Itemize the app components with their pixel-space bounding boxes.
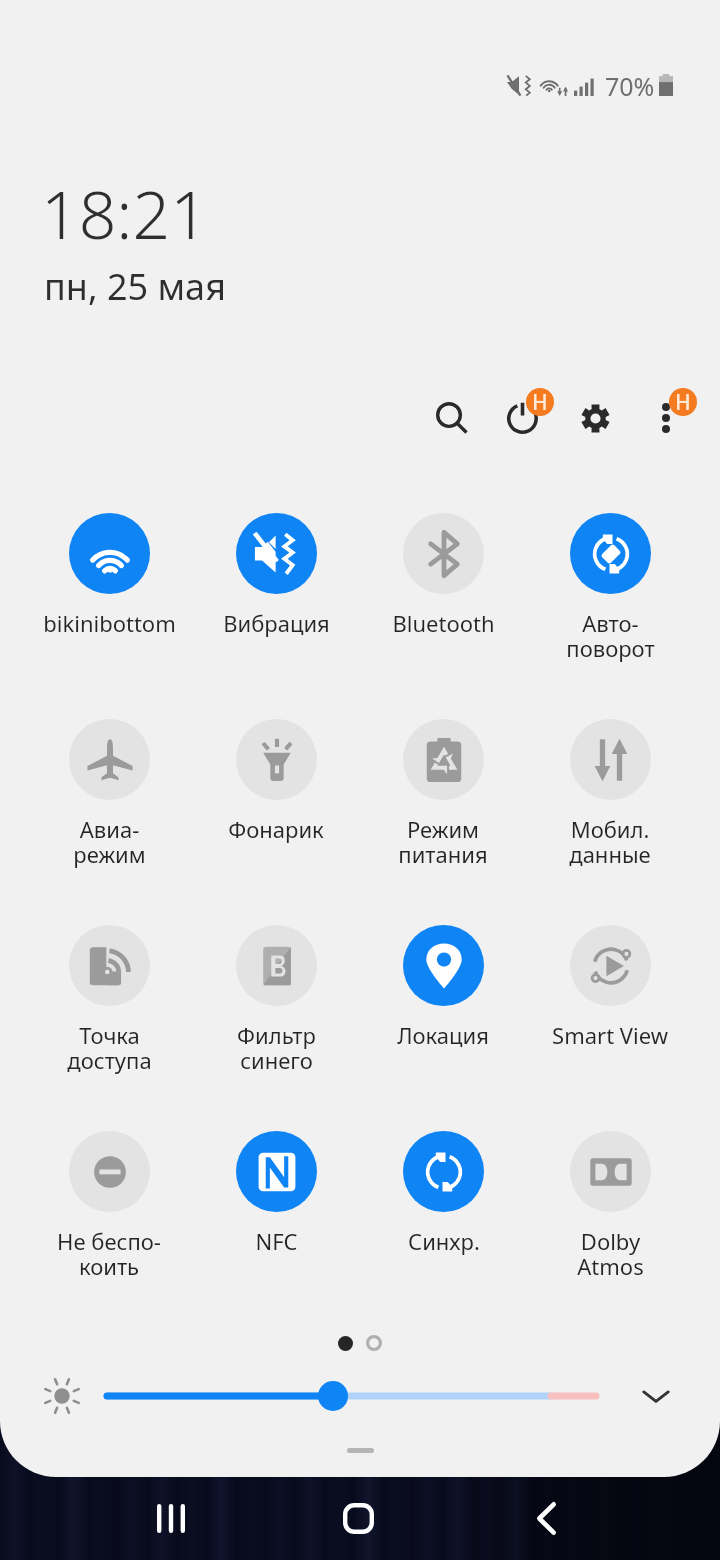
- button[interactable]: Recents: [125, 1477, 217, 1560]
- staticText: H: [532, 388, 548, 416]
- staticText: Smart View: [552, 1020, 668, 1050]
- button[interactable]: Search: [417, 383, 485, 451]
- button[interactable]: Синхр.: [360, 1131, 526, 1299]
- button[interactable]: Home: [312, 1477, 404, 1560]
- staticText: Фильтр синего: [237, 1020, 316, 1076]
- staticText: Dolby Atmos: [577, 1226, 644, 1282]
- staticText: H: [675, 388, 691, 416]
- staticText: Авто- поворот: [566, 608, 655, 664]
- button[interactable]: Settings: [561, 384, 629, 452]
- staticText: Точка доступа: [67, 1020, 152, 1076]
- button[interactable]: Авто- поворот: [527, 513, 693, 681]
- button[interactable]: Dolby Atmos: [527, 1131, 693, 1299]
- button[interactable]: Локация: [360, 925, 526, 1093]
- staticText: Bluetooth: [392, 608, 495, 638]
- button[interactable]: Power: [488, 384, 556, 452]
- button[interactable]: Back: [500, 1477, 592, 1560]
- button[interactable]: bikinibottom: [26, 513, 192, 681]
- button[interactable]: Режим питания: [360, 719, 526, 887]
- staticText: Авиа- режим: [73, 814, 146, 870]
- staticText: Фонарик: [228, 814, 324, 844]
- button[interactable]: NFC: [193, 1131, 359, 1299]
- staticText: NFC: [255, 1226, 298, 1256]
- button[interactable]: Точка доступа: [26, 925, 192, 1093]
- button[interactable]: Не беспо- коить: [26, 1131, 192, 1299]
- button[interactable]: More options: [632, 384, 700, 452]
- button[interactable]: Авиа- режим: [26, 719, 192, 887]
- staticText: пн, 25 мая: [44, 262, 226, 311]
- button[interactable]: Мобил. данные: [527, 719, 693, 887]
- button[interactable]: Фонарик: [193, 719, 359, 887]
- button[interactable]: Фильтр синего: [193, 925, 359, 1093]
- staticText: Не беспо- коить: [57, 1226, 161, 1282]
- staticText: Синхр.: [408, 1226, 480, 1256]
- button[interactable]: Smart View: [527, 925, 693, 1093]
- staticText: 70%: [605, 69, 655, 103]
- staticText: Локация: [397, 1020, 489, 1050]
- staticText: Вибрация: [223, 608, 330, 638]
- staticText: 18:21: [41, 168, 208, 258]
- button[interactable]: Expand: [628, 1368, 684, 1424]
- staticText: Мобил. данные: [569, 814, 651, 870]
- button[interactable]: Вибрация: [193, 513, 359, 681]
- staticText: Режим питания: [398, 814, 488, 870]
- button[interactable]: Bluetooth: [360, 513, 526, 681]
- staticText: bikinibottom: [43, 608, 176, 638]
